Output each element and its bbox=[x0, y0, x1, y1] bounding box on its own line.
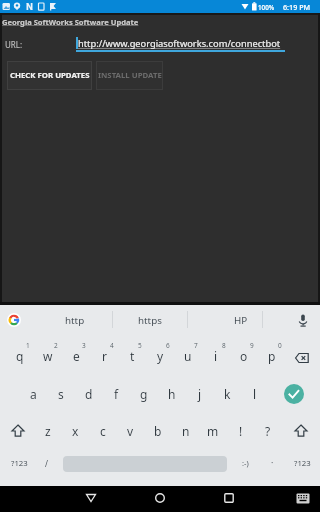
button[interactable]: j bbox=[187, 380, 213, 408]
staticText: 5 bbox=[138, 341, 142, 350]
button[interactable]: ?123 bbox=[0, 451, 119, 475]
staticText: z bbox=[45, 423, 51, 439]
button[interactable]: v bbox=[117, 417, 143, 445]
button[interactable]: d bbox=[76, 380, 102, 408]
staticText: ?123 bbox=[294, 458, 311, 469]
button[interactable]: https bbox=[50, 308, 250, 332]
staticText: 7 bbox=[194, 341, 198, 350]
staticText: t bbox=[130, 348, 135, 364]
button[interactable]: b bbox=[145, 417, 171, 445]
button[interactable]: m bbox=[200, 417, 226, 445]
button[interactable]: :-) bbox=[145, 451, 320, 475]
staticText: q bbox=[16, 348, 24, 364]
staticText: CHECK FOR UPDATES bbox=[10, 70, 90, 81]
staticText: c bbox=[100, 423, 106, 439]
button[interactable]: INSTALL UPDATE bbox=[96, 61, 163, 90]
staticText: 8 bbox=[222, 341, 226, 350]
staticText: Georgia SoftWorks Software Update bbox=[2, 17, 139, 27]
staticText: j bbox=[198, 386, 202, 402]
staticText: 4 bbox=[110, 341, 114, 350]
button[interactable]: / bbox=[0, 451, 146, 475]
staticText: w bbox=[43, 348, 53, 364]
button[interactable]: r bbox=[91, 342, 117, 370]
button[interactable] bbox=[154, 492, 166, 504]
staticText: d bbox=[85, 386, 93, 402]
staticText: 0 bbox=[278, 341, 282, 350]
staticText: s bbox=[58, 386, 64, 402]
staticText: 6 bbox=[166, 341, 170, 350]
staticText: k bbox=[224, 386, 231, 402]
button[interactable]: z bbox=[35, 417, 61, 445]
button[interactable] bbox=[284, 384, 304, 404]
button[interactable] bbox=[293, 423, 309, 439]
button[interactable]: p bbox=[259, 342, 285, 370]
button[interactable]: http://www.georgiasoftworks.com/connectb… bbox=[76, 36, 286, 52]
staticText: / bbox=[45, 458, 48, 469]
button[interactable]: i bbox=[203, 342, 229, 370]
button[interactable]: e bbox=[63, 342, 89, 370]
button[interactable] bbox=[294, 352, 310, 364]
staticText: ! bbox=[239, 423, 243, 439]
button[interactable]: s bbox=[48, 380, 74, 408]
button[interactable]: y bbox=[147, 342, 173, 370]
button[interactable]: t bbox=[119, 342, 145, 370]
staticText: · bbox=[271, 457, 274, 469]
staticText: ?123 bbox=[11, 458, 28, 469]
button[interactable] bbox=[85, 492, 97, 504]
button[interactable] bbox=[7, 313, 21, 327]
staticText: b bbox=[154, 423, 162, 439]
button[interactable] bbox=[223, 492, 235, 504]
staticText: h bbox=[168, 386, 176, 402]
staticText: ? bbox=[265, 423, 271, 439]
staticText: x bbox=[72, 423, 79, 439]
button[interactable] bbox=[10, 423, 26, 439]
staticText: n bbox=[182, 423, 190, 439]
staticText: URL: bbox=[5, 39, 23, 50]
staticText: :-) bbox=[242, 458, 249, 468]
staticText: u bbox=[184, 348, 192, 364]
button[interactable]: l bbox=[242, 380, 268, 408]
staticText: y bbox=[157, 348, 164, 364]
button[interactable] bbox=[296, 493, 310, 504]
button[interactable]: q bbox=[7, 342, 33, 370]
button[interactable]: h bbox=[159, 380, 185, 408]
staticText: http bbox=[65, 314, 85, 327]
staticText: m bbox=[207, 423, 219, 439]
staticText: f bbox=[114, 386, 119, 402]
staticText: a bbox=[30, 386, 37, 402]
button[interactable]: · bbox=[172, 451, 320, 475]
staticText: 9 bbox=[250, 341, 254, 350]
button[interactable]: CHECK FOR UPDATES bbox=[7, 61, 92, 90]
staticText: 2 bbox=[54, 341, 58, 350]
staticText: o bbox=[240, 348, 248, 364]
button[interactable]: f bbox=[103, 380, 129, 408]
staticText: HP bbox=[234, 314, 248, 327]
button[interactable]: w bbox=[35, 342, 61, 370]
staticText: 6:19 PM bbox=[283, 2, 311, 12]
button[interactable]: a bbox=[20, 380, 46, 408]
staticText: e bbox=[73, 348, 80, 364]
button[interactable]: c bbox=[90, 417, 116, 445]
button[interactable]: http bbox=[0, 308, 175, 332]
staticText: 100% bbox=[258, 3, 275, 12]
staticText: r bbox=[102, 348, 107, 364]
button[interactable]: ! bbox=[228, 417, 254, 445]
button[interactable]: n bbox=[173, 417, 199, 445]
staticText: v bbox=[127, 423, 134, 439]
staticText: INSTALL UPDATE bbox=[98, 70, 162, 81]
button[interactable]: o bbox=[231, 342, 257, 370]
button[interactable]: ?123 bbox=[202, 451, 320, 475]
button[interactable]: k bbox=[214, 380, 240, 408]
button[interactable] bbox=[297, 314, 309, 327]
button[interactable]: u bbox=[175, 342, 201, 370]
staticText: http://www.georgiasoftworks.com/connectb… bbox=[78, 37, 281, 50]
button[interactable]: HP bbox=[141, 308, 320, 332]
button[interactable]: g bbox=[131, 380, 157, 408]
button[interactable]: x bbox=[62, 417, 88, 445]
staticText: g bbox=[140, 386, 148, 402]
staticText: i bbox=[214, 348, 218, 364]
staticText: 3 bbox=[82, 341, 86, 350]
button[interactable]: ? bbox=[255, 417, 281, 445]
staticText: https bbox=[138, 314, 162, 327]
